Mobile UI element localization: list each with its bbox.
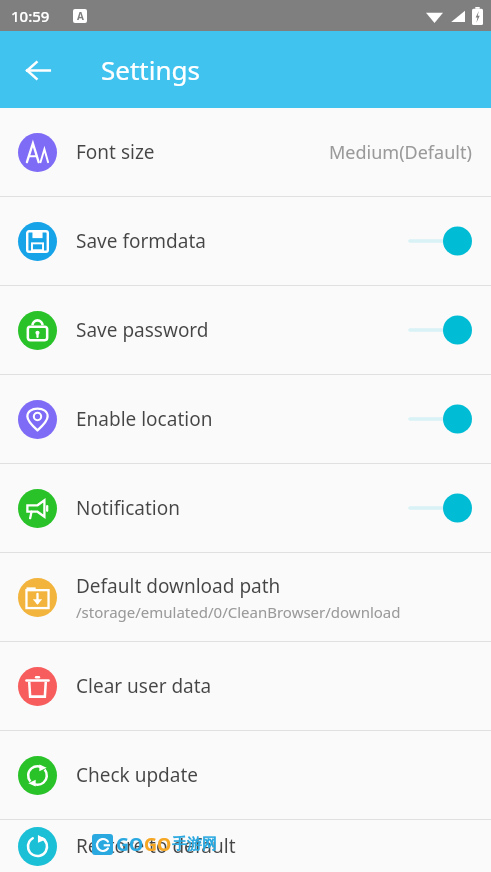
button[interactable]: Clear user data xyxy=(0,642,491,730)
button[interactable]: Back xyxy=(14,46,62,94)
staticText: Font size xyxy=(76,139,155,165)
staticText: Clear user data xyxy=(76,673,212,699)
button[interactable]: Default download path xyxy=(0,553,491,641)
button[interactable]: Save password xyxy=(0,286,491,374)
staticText: Save formdata xyxy=(76,228,206,254)
button[interactable]: Restore to default xyxy=(0,820,491,872)
button[interactable] xyxy=(406,224,472,258)
staticText: A xyxy=(77,9,84,23)
button[interactable] xyxy=(406,313,472,347)
staticText: Save password xyxy=(76,317,209,343)
staticText: Check update xyxy=(76,762,199,788)
button[interactable] xyxy=(406,402,472,436)
button[interactable]: Save formdata xyxy=(0,197,491,285)
staticText: Medium(Default) xyxy=(329,140,472,165)
staticText: 手游网 xyxy=(172,835,217,854)
staticText: Default download path xyxy=(76,573,281,599)
button[interactable]: Font size xyxy=(0,108,491,196)
button[interactable]: Enable location xyxy=(0,375,491,463)
button[interactable]: Check update xyxy=(0,731,491,819)
staticText: GO xyxy=(144,832,172,857)
staticText: Notification xyxy=(76,495,180,521)
staticText: 10:59 xyxy=(11,6,50,26)
staticText: Enable location xyxy=(76,406,213,432)
staticText: Restore to default xyxy=(76,833,236,859)
staticText: GO xyxy=(116,832,144,857)
button[interactable] xyxy=(406,491,472,525)
staticText: /storage/emulated/0/CleanBrowser/downloa… xyxy=(76,602,401,622)
staticText: Settings xyxy=(101,52,200,87)
button[interactable]: Notification xyxy=(0,464,491,552)
